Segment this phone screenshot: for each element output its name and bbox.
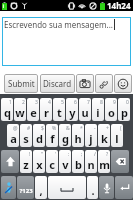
- button[interactable]: Take photo: [76, 74, 94, 93]
- staticText: g: [62, 131, 69, 146]
- staticText: Escrevendo sua mensagem...: [4, 19, 113, 30]
- staticText: b: [75, 157, 82, 172]
- button[interactable]: x: [33, 150, 45, 173]
- staticText: ?123: [19, 187, 33, 195]
- staticText: 8: [100, 99, 103, 106]
- button[interactable]: h: [72, 124, 84, 147]
- button[interactable]: Attach file: [95, 74, 113, 93]
- staticText: z: [23, 157, 29, 172]
- button[interactable]: Shift: [1, 150, 19, 173]
- button[interactable]: Space: [48, 176, 86, 199]
- button[interactable]: p: [118, 98, 130, 121]
- staticText: (: [120, 125, 122, 132]
- staticText: ;: [81, 151, 83, 158]
- staticText: v: [62, 157, 69, 172]
- staticText: $: [41, 125, 44, 132]
- button[interactable]: f: [46, 124, 58, 147]
- button[interactable]: Submit: [4, 74, 38, 93]
- button[interactable]: q: [1, 98, 13, 121]
- staticText: &: [66, 125, 70, 132]
- staticText: q: [4, 105, 11, 120]
- button[interactable]: Discard: [40, 74, 75, 93]
- button[interactable]: n: [85, 150, 97, 173]
- staticText: #: [27, 125, 31, 132]
- staticText: f: [50, 131, 55, 146]
- button[interactable]: y: [66, 98, 78, 121]
- button[interactable]: m: [98, 150, 110, 173]
- button[interactable]: o: [105, 98, 117, 121]
- staticText: 1: [9, 99, 12, 106]
- staticText: Discard: [43, 78, 72, 89]
- button[interactable]: v: [59, 150, 71, 173]
- button[interactable]: u: [79, 98, 91, 121]
- staticText: 4: [48, 99, 51, 106]
- staticText: 9: [113, 99, 116, 106]
- button[interactable]: a: [7, 124, 19, 147]
- button[interactable]: Change input method: [1, 176, 16, 199]
- button[interactable]: s: [20, 124, 32, 147]
- staticText: 14h24: [107, 0, 131, 11]
- button[interactable]: .: [87, 176, 98, 199]
- staticText: w: [15, 105, 25, 120]
- staticText: h: [74, 131, 82, 146]
- button[interactable]: Escrevendo sua mensagem...: [2, 17, 131, 66]
- staticText: r: [44, 105, 49, 120]
- staticText: o: [108, 105, 115, 120]
- staticText: 7: [87, 99, 90, 106]
- staticText: s: [23, 131, 29, 146]
- staticText: %: [52, 125, 57, 132]
- staticText: 5: [61, 99, 64, 106]
- staticText: x: [36, 157, 43, 172]
- button[interactable]: l: [111, 124, 123, 147]
- staticText: @: [13, 125, 18, 132]
- staticText: /: [94, 151, 96, 158]
- button[interactable]: g: [59, 124, 71, 147]
- button[interactable]: j: [85, 124, 97, 147]
- button[interactable]: ,: [35, 176, 47, 199]
- staticText: 6: [74, 99, 77, 106]
- staticText: e: [30, 105, 37, 120]
- staticText: k: [101, 131, 108, 146]
- staticText: ': [55, 151, 57, 158]
- staticText: ": [41, 151, 44, 158]
- staticText: n: [87, 157, 95, 172]
- staticText: ?: [106, 151, 109, 158]
- button[interactable]: r: [40, 98, 52, 121]
- button[interactable]: e: [27, 98, 39, 121]
- button[interactable]: d: [33, 124, 45, 147]
- button[interactable]: b: [72, 150, 84, 173]
- staticText: *: [80, 125, 83, 132]
- button[interactable]: Insert emoji: [114, 74, 132, 93]
- staticText: !: [29, 151, 31, 158]
- button[interactable]: ?123: [17, 176, 34, 199]
- staticText: :: [68, 151, 70, 158]
- button[interactable]: w: [14, 98, 26, 121]
- button[interactable]: i: [92, 98, 104, 121]
- staticText: 3: [35, 99, 38, 106]
- staticText: Submit: [8, 78, 35, 89]
- button[interactable]: Backspace: [111, 150, 129, 173]
- staticText: .: [91, 183, 95, 198]
- staticText: -: [94, 125, 96, 132]
- staticText: l: [115, 131, 119, 146]
- staticText: t: [57, 105, 62, 120]
- staticText: u: [81, 105, 89, 120]
- staticText: j: [89, 131, 93, 146]
- button[interactable]: Enter: [115, 176, 133, 199]
- staticText: d: [36, 131, 43, 146]
- staticText: ,: [39, 183, 43, 198]
- button[interactable]: Voice input: [99, 176, 114, 199]
- staticText: p: [121, 105, 128, 120]
- staticText: c: [49, 157, 55, 172]
- staticText: i: [96, 105, 100, 120]
- staticText: 0: [126, 99, 129, 106]
- button[interactable]: c: [46, 150, 58, 173]
- staticText: a: [10, 131, 17, 146]
- staticText: 2: [22, 99, 25, 106]
- staticText: m: [99, 157, 110, 172]
- button[interactable]: k: [98, 124, 110, 147]
- staticText: y: [69, 105, 76, 120]
- staticText: +: [106, 125, 109, 132]
- button[interactable]: t: [53, 98, 65, 121]
- button[interactable]: z: [20, 150, 32, 173]
